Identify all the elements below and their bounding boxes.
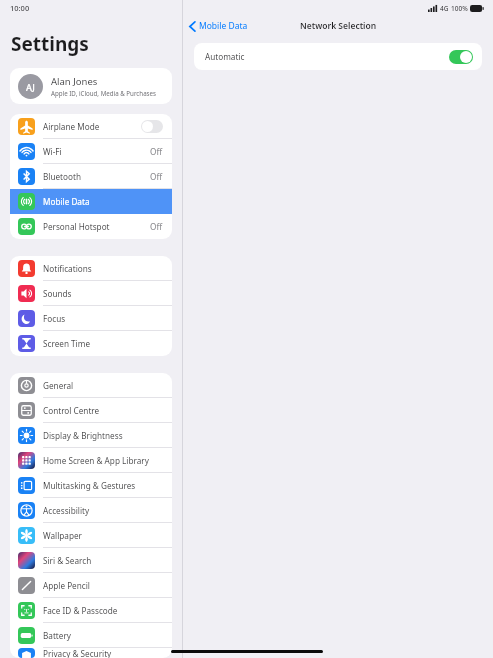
- button[interactable]: Automatic: [194, 43, 482, 70]
- staticText: Off: [150, 171, 163, 182]
- button[interactable]: Mobile Data: [189, 20, 248, 32]
- staticText: Wi-Fi: [43, 146, 150, 157]
- staticText: 100%: [451, 4, 468, 13]
- button[interactable]: Wallpaper: [10, 523, 172, 548]
- button[interactable]: Control Centre: [10, 398, 172, 423]
- button[interactable]: General: [10, 373, 172, 398]
- button[interactable]: Siri & Search: [10, 548, 172, 573]
- staticText: Screen Time: [43, 338, 163, 349]
- staticText: Apple Pencil: [43, 580, 163, 591]
- button[interactable]: Focus: [10, 306, 172, 331]
- staticText: 10:00: [10, 3, 30, 13]
- button[interactable]: Display & Brightness: [10, 423, 172, 448]
- button[interactable]: Battery: [10, 623, 172, 648]
- staticText: Mobile Data: [199, 20, 248, 32]
- button[interactable]: Home Screen & App Library: [10, 448, 172, 473]
- staticText: Apple ID, iCloud, Media & Purchases: [51, 89, 157, 97]
- staticText: Battery: [43, 630, 163, 641]
- button[interactable]: Wi-Fi: [10, 139, 172, 164]
- staticText: Privacy & Security: [43, 648, 163, 658]
- staticText: Off: [150, 146, 163, 157]
- button[interactable]: Airplane Mode: [10, 114, 172, 139]
- button[interactable]: Multitasking & Gestures: [10, 473, 172, 498]
- staticText: Settings: [11, 31, 89, 57]
- button[interactable]: Mobile Data: [10, 189, 172, 214]
- staticText: Bluetooth: [43, 171, 150, 182]
- staticText: Airplane Mode: [43, 121, 141, 132]
- staticText: Personal Hotspot: [43, 221, 150, 232]
- button[interactable]: Apple Pencil: [10, 573, 172, 598]
- staticText: Mobile Data: [43, 196, 163, 207]
- button[interactable]: Screen Time: [10, 331, 172, 356]
- staticText: Face ID & Passcode: [43, 605, 163, 616]
- button[interactable]: Airplane Mode toggle: [141, 120, 163, 133]
- staticText: Multitasking & Gestures: [43, 480, 163, 491]
- staticText: Siri & Search: [43, 555, 163, 566]
- button[interactable]: Face ID & Passcode: [10, 598, 172, 623]
- staticText: Accessibility: [43, 505, 163, 516]
- button[interactable]: Personal Hotspot: [10, 214, 172, 239]
- button[interactable]: Accessibility: [10, 498, 172, 523]
- staticText: Display & Brightness: [43, 430, 163, 441]
- button[interactable]: Bluetooth: [10, 164, 172, 189]
- staticText: Sounds: [43, 288, 163, 299]
- staticText: Notifications: [43, 263, 163, 274]
- button[interactable]: Sounds: [10, 281, 172, 306]
- staticText: Alan Jones: [51, 75, 98, 88]
- staticText: 4G: [440, 4, 449, 13]
- staticText: AJ: [26, 81, 35, 93]
- button[interactable]: Privacy & Security: [10, 648, 172, 658]
- button[interactable]: AJ: [10, 68, 172, 104]
- staticText: Off: [150, 221, 163, 232]
- staticText: Network Selection: [300, 20, 377, 32]
- staticText: Control Centre: [43, 405, 163, 416]
- button[interactable]: Notifications: [10, 256, 172, 281]
- button[interactable]: Automatic toggle, on: [449, 50, 473, 64]
- staticText: Focus: [43, 313, 163, 324]
- staticText: Automatic: [205, 51, 245, 62]
- staticText: Home Screen & App Library: [43, 455, 163, 466]
- staticText: General: [43, 380, 163, 391]
- staticText: Wallpaper: [43, 530, 163, 541]
